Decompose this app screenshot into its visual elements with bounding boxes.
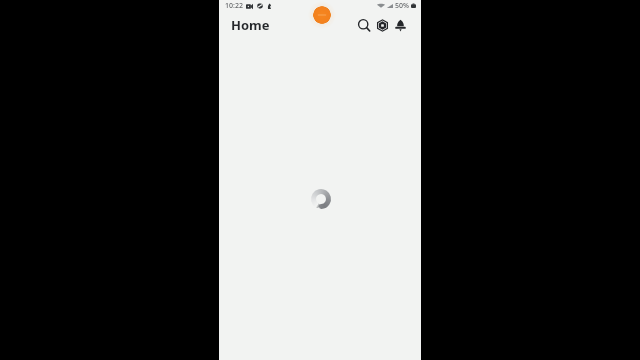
button[interactable]: Camera: [375, 18, 390, 33]
staticText: Home: [231, 16, 270, 34]
button[interactable]: Notifications: [393, 18, 408, 33]
staticText: 50%: [395, 1, 409, 11]
button[interactable]: Search: [357, 18, 372, 33]
staticText: 10:22: [225, 1, 243, 11]
